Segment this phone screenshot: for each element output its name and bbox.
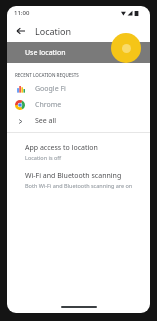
staticText: Chrome <box>35 100 62 110</box>
button[interactable]: Back <box>13 23 29 39</box>
button[interactable]: Wi-Fi and Bluetooth scanning <box>7 166 150 194</box>
staticText: App access to location <box>25 143 98 153</box>
staticText: See all <box>35 116 57 126</box>
staticText: Location is off <box>25 154 62 161</box>
button[interactable]: Use location toggle <box>111 33 141 63</box>
button[interactable]: Chrome <box>7 97 150 113</box>
staticText: Wi-Fi and Bluetooth scanning <box>25 171 122 181</box>
button[interactable]: Google Fi <box>7 81 150 97</box>
button[interactable]: See all <box>7 113 150 129</box>
button[interactable]: Use location <box>7 42 150 63</box>
staticText: 11:00 <box>14 9 30 17</box>
staticText: Location <box>35 25 72 37</box>
staticText: RECENT LOCATION REQUESTS <box>15 72 79 78</box>
button[interactable]: App access to location <box>7 138 150 166</box>
staticText: Use location <box>25 48 66 58</box>
staticText: Both Wi-Fi and Bluetooth scanning are on <box>25 182 133 189</box>
staticText: Google Fi <box>35 84 66 94</box>
